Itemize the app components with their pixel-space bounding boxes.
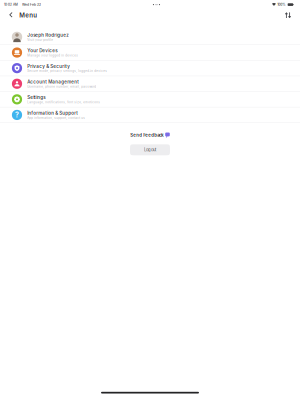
button[interactable]: ? xyxy=(0,107,300,123)
staticText: App information, support, contact us xyxy=(27,116,85,120)
staticText: Send Feedback xyxy=(130,133,163,138)
staticText: Wed Feb 22 xyxy=(22,3,41,7)
button[interactable]: Joseph Rodriguez xyxy=(0,29,300,45)
staticText: 100% xyxy=(277,3,285,7)
staticText: Logout xyxy=(144,147,156,152)
staticText: Account Management xyxy=(27,79,79,85)
staticText: Menu xyxy=(19,11,37,19)
button[interactable]: Display options xyxy=(279,9,300,21)
staticText: Visit your profile xyxy=(27,38,53,42)
button[interactable]: Privacy & Security xyxy=(0,61,300,76)
button[interactable]: Account Management xyxy=(0,76,300,92)
staticText: Language, notifications, font size, emot… xyxy=(27,100,100,104)
staticText: 10:02 AM xyxy=(4,3,18,6)
button[interactable]: Settings xyxy=(0,92,300,107)
staticText: Joseph Rodriguez xyxy=(27,32,69,38)
staticText: Username, phone number, email, password xyxy=(27,85,96,88)
staticText: Settings xyxy=(27,95,45,100)
button[interactable]: Back xyxy=(0,9,19,21)
staticText: Your Devices xyxy=(27,48,57,53)
staticText: ? xyxy=(15,111,19,119)
staticText: Privacy & Security xyxy=(27,63,70,69)
staticText: Information & Support xyxy=(27,110,78,116)
button[interactable]: Logout xyxy=(130,144,170,155)
button[interactable]: Send Feedback xyxy=(126,123,174,144)
staticText: Manage your logged in devices xyxy=(27,54,78,57)
staticText: Secure mode, privacy settings, logged-in… xyxy=(27,69,107,73)
button[interactable]: Your Devices xyxy=(0,45,300,61)
